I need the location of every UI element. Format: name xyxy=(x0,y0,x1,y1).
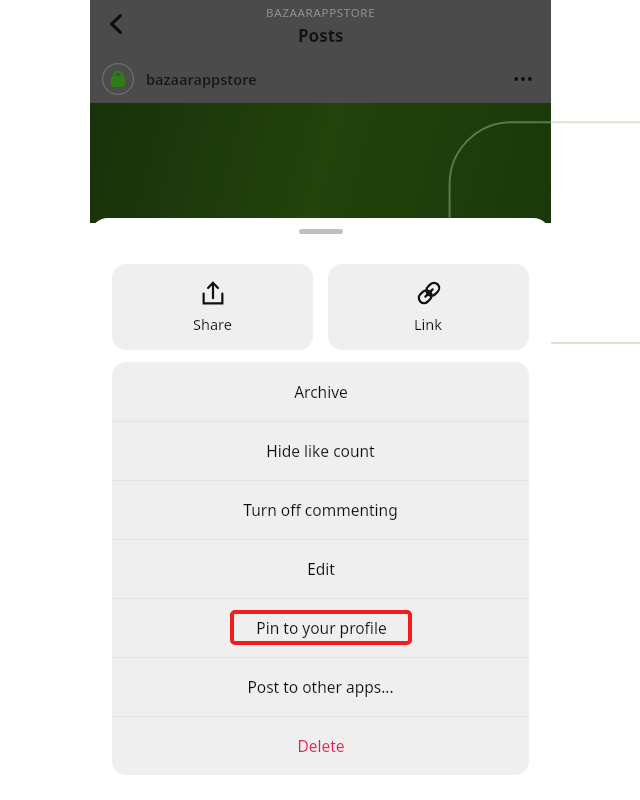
staticText: bazaarappstore xyxy=(146,69,257,89)
button[interactable]: More options xyxy=(501,57,545,101)
staticText: Posts xyxy=(298,24,344,47)
staticText: Post to other apps... xyxy=(247,676,394,697)
staticText: Pin to your profile xyxy=(256,617,387,638)
button[interactable]: Hide like count xyxy=(112,421,529,480)
button[interactable]: Turn off commenting xyxy=(112,480,529,539)
button[interactable]: Back xyxy=(94,2,138,46)
button[interactable]: Edit xyxy=(112,539,529,598)
staticText: Delete xyxy=(297,735,345,756)
button[interactable]: Post to other apps... xyxy=(112,657,529,716)
button[interactable]: Share xyxy=(112,264,313,350)
staticText: BAZAARAPPSTORE xyxy=(266,5,376,21)
staticText: Link xyxy=(414,314,443,334)
staticText: Turn off commenting xyxy=(243,499,398,520)
button[interactable]: Link xyxy=(328,264,529,350)
button[interactable]: Delete xyxy=(112,716,529,775)
button[interactable]: Archive xyxy=(112,362,529,421)
staticText: Share xyxy=(193,314,232,334)
button[interactable]: Pin to your profile xyxy=(112,598,529,657)
staticText: Archive xyxy=(294,381,348,402)
staticText: Edit xyxy=(307,558,335,579)
staticText: Hide like count xyxy=(266,440,375,461)
